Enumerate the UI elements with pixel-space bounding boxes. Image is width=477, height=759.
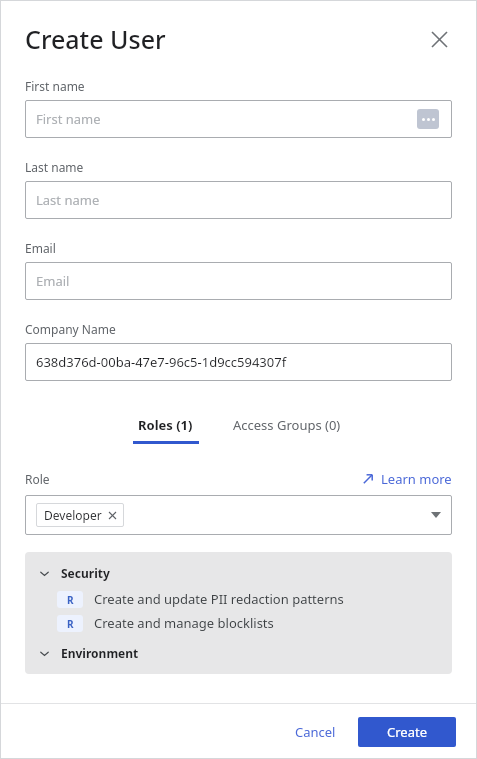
staticText: Role: [25, 471, 50, 487]
staticText: Create and manage blocklists: [94, 614, 274, 632]
button[interactable]: Cancel: [281, 714, 350, 750]
button[interactable]: Autofill: [417, 109, 439, 129]
staticText: R: [67, 593, 74, 607]
button[interactable]: Developer: [25, 495, 452, 535]
staticText: Last name: [36, 191, 100, 209]
staticText: Email: [36, 272, 70, 290]
staticText: R: [67, 617, 74, 631]
button[interactable]: Developer: [36, 503, 124, 527]
staticText: Create: [387, 723, 427, 741]
staticText: Last name: [25, 159, 84, 175]
button[interactable]: R: [39, 590, 438, 608]
staticText: First name: [36, 110, 101, 128]
staticText: Email: [25, 240, 56, 256]
button[interactable]: Create: [358, 717, 456, 747]
button[interactable]: Email: [25, 262, 452, 300]
staticText: Environment: [61, 645, 139, 661]
button[interactable]: Close: [423, 23, 455, 55]
button[interactable]: Access Groups (0): [223, 409, 351, 444]
button[interactable]: Security: [39, 565, 438, 581]
staticText: Create User: [25, 22, 166, 56]
staticText: Learn more: [381, 470, 452, 488]
staticText: Security: [61, 565, 110, 581]
staticText: 638d376d-00ba-47e7-96c5-1d9cc594307f: [36, 353, 287, 371]
button[interactable]: R: [39, 614, 438, 632]
staticText: First name: [25, 78, 85, 94]
staticText: Create and update PII redaction patterns: [94, 590, 344, 608]
staticText: Cancel: [295, 723, 336, 741]
button[interactable]: 638d376d-00ba-47e7-96c5-1d9cc594307f: [25, 343, 452, 381]
button[interactable]: First name: [25, 100, 452, 138]
staticText: Company Name: [25, 321, 116, 337]
staticText: Developer: [44, 507, 102, 523]
button[interactable]: Last name: [25, 181, 452, 219]
button[interactable]: Roles (1): [126, 409, 205, 444]
staticText: Roles (1): [138, 416, 193, 434]
staticText: Access Groups (0): [233, 416, 341, 434]
button[interactable]: Environment: [39, 645, 438, 661]
button[interactable]: Learn more: [362, 470, 452, 488]
